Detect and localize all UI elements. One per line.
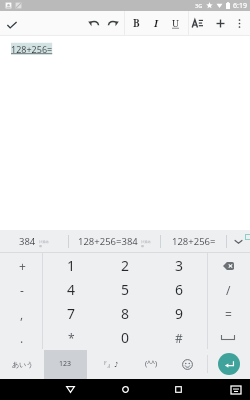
- staticText: B: [133, 17, 140, 30]
- staticText: I: [154, 17, 158, 30]
- button[interactable]: 3: [152, 253, 206, 277]
- button[interactable]: +: [0, 253, 44, 277]
- staticText: 128+256=384: [78, 235, 138, 248]
- button[interactable]: 7: [44, 301, 98, 325]
- staticText: 2: [121, 256, 130, 275]
- staticText: 4: [67, 280, 76, 299]
- staticText: 3: [175, 256, 184, 275]
- button[interactable]: 2: [98, 253, 152, 277]
- staticText: 1: [67, 256, 76, 275]
- other: Backspace: [223, 262, 234, 270]
- staticText: =: [225, 306, 232, 322]
- staticText: /: [226, 282, 231, 298]
- button[interactable]: .: [0, 325, 44, 349]
- staticText: 6:19: [233, 1, 247, 11]
- button[interactable]: Hide keyboard: [226, 379, 246, 400]
- button[interactable]: Redo: [103, 11, 123, 36]
- staticText: あいう: [12, 360, 34, 369]
- button[interactable]: 128+256=: [161, 230, 226, 253]
- button[interactable]: 123: [44, 349, 87, 379]
- button[interactable]: Emoji: [168, 349, 206, 379]
- button[interactable]: U: [166, 11, 186, 36]
- staticText: (^^): [145, 359, 158, 369]
- button[interactable]: More options: [229, 11, 249, 36]
- button[interactable]: Done: [0, 11, 24, 36]
- button[interactable]: Add: [210, 11, 230, 36]
- staticText: #: [175, 330, 183, 346]
- button[interactable]: Undo: [83, 11, 103, 36]
- staticText: U: [172, 17, 180, 30]
- staticText: .: [20, 330, 24, 346]
- button[interactable]: (^^): [130, 349, 173, 379]
- button[interactable]: ,: [0, 301, 44, 325]
- staticText: 計算結果: [39, 240, 50, 247]
- staticText: 6: [175, 280, 184, 299]
- button[interactable]: #: [152, 325, 206, 349]
- button[interactable]: =: [206, 301, 250, 325]
- staticText: 7: [67, 304, 76, 323]
- staticText: -: [20, 282, 24, 298]
- staticText: 384: [19, 235, 36, 248]
- button[interactable]: 8: [98, 301, 152, 325]
- staticText: 『』♪: [100, 360, 119, 369]
- button[interactable]: Text format: [187, 11, 207, 36]
- staticText: +: [19, 258, 26, 274]
- button[interactable]: Home: [111, 379, 139, 400]
- staticText: ,: [20, 306, 24, 322]
- staticText: 0: [121, 328, 130, 347]
- button[interactable]: Expand suggestions: [227, 230, 250, 253]
- staticText: 128+256=: [11, 43, 53, 55]
- button[interactable]: Backspace: [206, 253, 250, 277]
- button[interactable]: 1: [44, 253, 98, 277]
- button[interactable]: 4: [44, 277, 98, 301]
- staticText: 123: [59, 359, 72, 369]
- staticText: 3G: [195, 2, 203, 9]
- button[interactable]: /: [206, 277, 250, 301]
- button[interactable]: Space: [206, 325, 250, 349]
- button[interactable]: あいう: [1, 349, 44, 379]
- button[interactable]: B: [126, 11, 146, 36]
- staticText: 9: [175, 304, 184, 323]
- button[interactable]: Enter: [208, 349, 250, 379]
- button[interactable]: Recents: [164, 379, 192, 400]
- button[interactable]: -: [0, 277, 44, 301]
- button[interactable]: 384: [0, 230, 68, 253]
- other: Space: [221, 335, 235, 340]
- staticText: *: [68, 330, 75, 346]
- button[interactable]: 6: [152, 277, 206, 301]
- button[interactable]: 128+256=384: [69, 230, 160, 253]
- button[interactable]: 9: [152, 301, 206, 325]
- staticText: 8: [121, 304, 130, 323]
- button[interactable]: 0: [98, 325, 152, 349]
- button[interactable]: *: [44, 325, 98, 349]
- staticText: 128+256=: [172, 235, 216, 248]
- button[interactable]: Back: [56, 379, 84, 400]
- staticText: 5: [121, 280, 130, 299]
- staticText: 計算結果: [141, 240, 152, 247]
- button[interactable]: 5: [98, 277, 152, 301]
- button[interactable]: I: [146, 11, 166, 36]
- button[interactable]: 『』♪: [88, 349, 131, 379]
